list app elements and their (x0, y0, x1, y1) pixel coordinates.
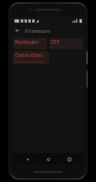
button[interactable]: Navigate up (13, 26, 22, 35)
button[interactable]: Back (22, 154, 32, 164)
button[interactable]: OTP (49, 38, 83, 49)
button[interactable]: Recent apps (64, 154, 74, 164)
staticText: Read Protect Level: none (51, 46, 81, 48)
staticText: OTP (51, 39, 60, 45)
button[interactable]: Bootloader (13, 38, 47, 49)
staticText: Option Bytes (15, 52, 43, 58)
staticText: Read Protect Level: none (15, 59, 47, 63)
staticText: Firmware (25, 27, 51, 34)
staticText: Bootloader (15, 39, 39, 45)
button[interactable]: Home (43, 154, 53, 164)
button[interactable]: Option Bytes (13, 51, 49, 64)
